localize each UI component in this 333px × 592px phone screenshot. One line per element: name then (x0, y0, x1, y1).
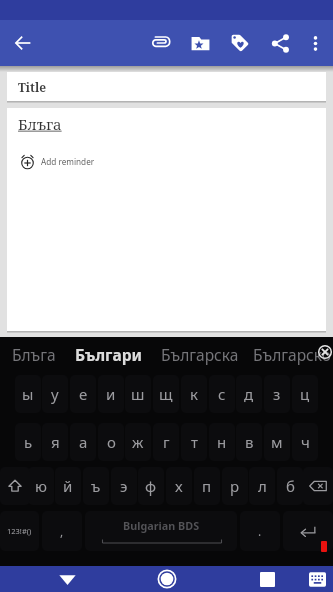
button[interactable]: ф (138, 467, 164, 505)
staticText: Title (18, 79, 47, 95)
button[interactable]: Space (85, 511, 237, 551)
staticText: ч (301, 432, 310, 452)
button[interactable]: Блъга (0, 337, 67, 371)
staticText: я (51, 432, 60, 452)
button[interactable]: е (70, 375, 96, 413)
staticText: э (120, 476, 128, 496)
staticText: з (273, 384, 281, 404)
button[interactable]: Title (7, 72, 326, 101)
button[interactable]: п (194, 467, 220, 505)
staticText: 123!#() (7, 526, 32, 536)
staticText: ш (131, 384, 145, 404)
staticText: ъ (91, 476, 101, 496)
button[interactable]: р (222, 467, 248, 505)
staticText: Българска (161, 344, 239, 365)
button[interactable]: Shift (0, 467, 30, 505)
button[interactable]: щ (153, 375, 179, 413)
staticText: х (175, 476, 183, 496)
button[interactable]: э (111, 467, 137, 505)
button[interactable]: Българи (67, 337, 150, 371)
button[interactable]: Backspace (303, 467, 333, 505)
button[interactable]: х (166, 467, 192, 505)
staticText: о (107, 432, 116, 452)
button[interactable]: о (98, 423, 124, 461)
staticText: ю (35, 476, 47, 496)
staticText: н (217, 432, 227, 452)
button[interactable]: 123!#() (0, 511, 39, 551)
staticText: л (258, 476, 267, 496)
button[interactable]: ь (15, 423, 41, 461)
staticText: б (286, 476, 295, 496)
staticText: к (190, 384, 198, 404)
staticText: п (202, 476, 212, 496)
button[interactable]: Label (223, 26, 257, 60)
staticText: Bulgarian BDS (123, 518, 200, 533)
staticText: д (244, 384, 254, 404)
button[interactable]: More options (299, 27, 331, 59)
button[interactable]: Recents (254, 566, 280, 592)
staticText: Блъга (12, 344, 56, 365)
button[interactable]: ч (292, 423, 318, 461)
button[interactable]: ъ (83, 467, 109, 505)
button[interactable]: Close suggestions (312, 339, 333, 364)
staticText: , (60, 523, 64, 539)
button[interactable]: т (181, 423, 207, 461)
button[interactable]: ю (28, 467, 54, 505)
button[interactable]: к (181, 375, 207, 413)
button[interactable]: и (98, 375, 124, 413)
staticText: ы (22, 384, 34, 404)
button[interactable]: , (42, 511, 82, 551)
staticText: м (271, 432, 283, 452)
button[interactable]: Back (54, 566, 80, 592)
button[interactable]: й (55, 467, 81, 505)
staticText: и (106, 384, 116, 404)
button[interactable]: ы (15, 375, 41, 413)
staticText: щ (159, 384, 173, 404)
button[interactable]: . (240, 511, 280, 551)
button[interactable]: з (264, 375, 290, 413)
button[interactable]: с (209, 375, 235, 413)
button[interactable]: Add reminder (7, 149, 326, 173)
staticText: . (258, 523, 262, 539)
button[interactable]: м (264, 423, 290, 461)
staticText: ц (300, 384, 310, 404)
button[interactable]: Българско (250, 337, 333, 371)
button[interactable]: д (236, 375, 262, 413)
staticText: в (245, 432, 254, 452)
button[interactable]: Switch keyboard (304, 566, 330, 592)
staticText: ь (24, 432, 33, 452)
staticText: ж (132, 432, 144, 452)
staticText: Българско (253, 344, 331, 365)
button[interactable]: ц (292, 375, 318, 413)
button[interactable]: ш (125, 375, 151, 413)
staticText: ф (145, 476, 157, 496)
button[interactable]: г (153, 423, 179, 461)
staticText: Блъга (18, 114, 62, 134)
button[interactable]: Back (4, 24, 42, 62)
button[interactable]: в (236, 423, 262, 461)
button[interactable]: Attach (144, 26, 178, 60)
staticText: у (51, 384, 59, 404)
button[interactable]: Българска (150, 337, 250, 371)
staticText: с (218, 384, 226, 404)
staticText: а (79, 432, 88, 452)
button[interactable]: н (209, 423, 235, 461)
staticText: й (63, 476, 73, 496)
staticText: р (230, 476, 240, 496)
button[interactable]: я (42, 423, 68, 461)
button[interactable]: Enter (283, 511, 333, 551)
button[interactable]: б (277, 467, 303, 505)
button[interactable]: у (42, 375, 68, 413)
button[interactable]: Share (263, 26, 297, 60)
staticText: Българи (75, 344, 143, 365)
staticText: г (163, 432, 170, 452)
button[interactable]: л (249, 467, 275, 505)
staticText: т (191, 432, 198, 452)
button[interactable]: Home (154, 566, 180, 592)
staticText: Add reminder (41, 156, 95, 167)
button[interactable]: а (70, 423, 96, 461)
staticText: е (79, 384, 88, 404)
button[interactable]: Add to folder (183, 26, 217, 60)
button[interactable]: ж (125, 423, 151, 461)
